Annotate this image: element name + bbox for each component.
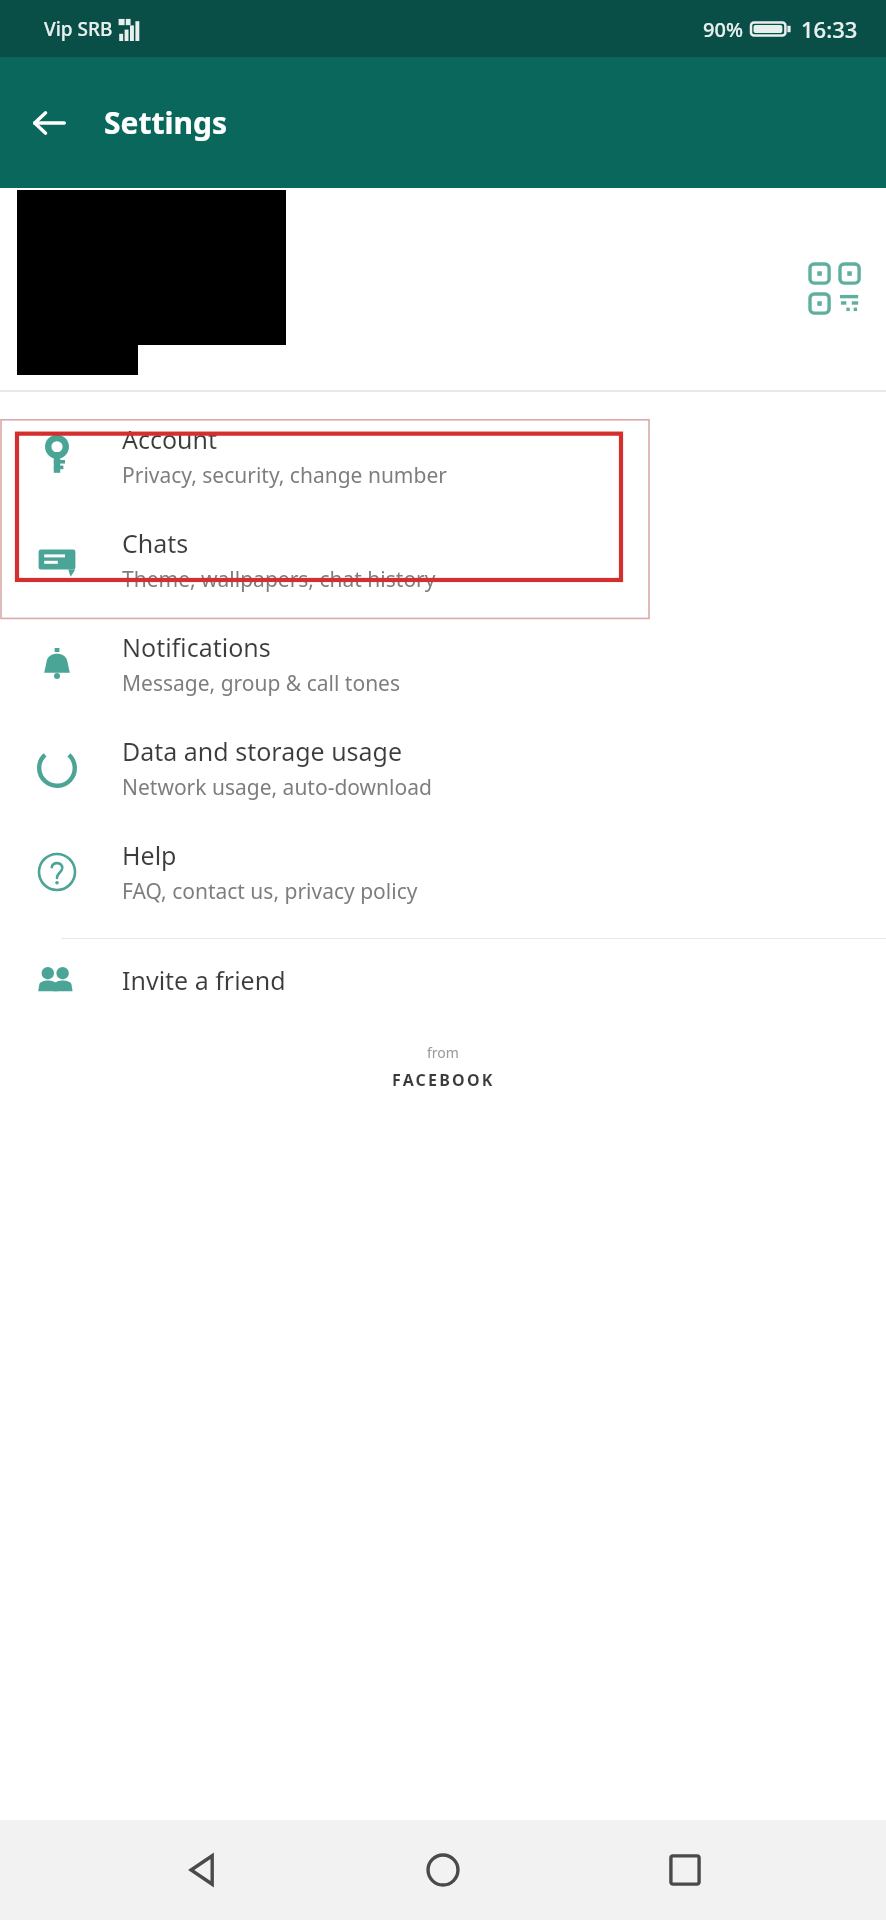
staticText: 16:33 (801, 14, 858, 44)
staticText: Notifications (122, 630, 271, 664)
button[interactable]: QR code (798, 252, 872, 326)
button[interactable]: Recent apps (645, 1830, 725, 1910)
button[interactable]: Account (0, 404, 886, 508)
staticText: FACEBOOK (392, 1069, 495, 1091)
button[interactable]: Home (403, 1830, 483, 1910)
staticText: Vip SRB (44, 16, 113, 42)
staticText: Invite a friend (122, 963, 286, 997)
button[interactable]: Notifications (0, 612, 886, 716)
staticText: 90% (703, 16, 743, 43)
button[interactable]: Data and storage usage (0, 716, 886, 820)
staticText: Data and storage usage (122, 734, 403, 768)
button[interactable]: Chats (0, 508, 886, 612)
staticText: Chats (122, 526, 189, 560)
staticText: Account (122, 422, 218, 456)
button[interactable]: Back (20, 94, 78, 152)
staticText: FAQ, contact us, privacy policy (122, 877, 418, 906)
staticText: Help (122, 838, 177, 872)
staticText: Theme, wallpapers, chat history (122, 565, 436, 594)
staticText: Network usage, auto-download (122, 773, 432, 802)
staticText: Settings (104, 102, 227, 143)
staticText: Privacy, security, change number (122, 461, 447, 490)
button[interactable]: Invite a friend (0, 939, 886, 1021)
button[interactable]: Help (0, 820, 886, 924)
staticText: Message, group & call tones (122, 669, 401, 698)
staticText: from (427, 1043, 459, 1062)
button[interactable]: QR code (0, 188, 886, 390)
button[interactable]: Back (162, 1830, 242, 1910)
